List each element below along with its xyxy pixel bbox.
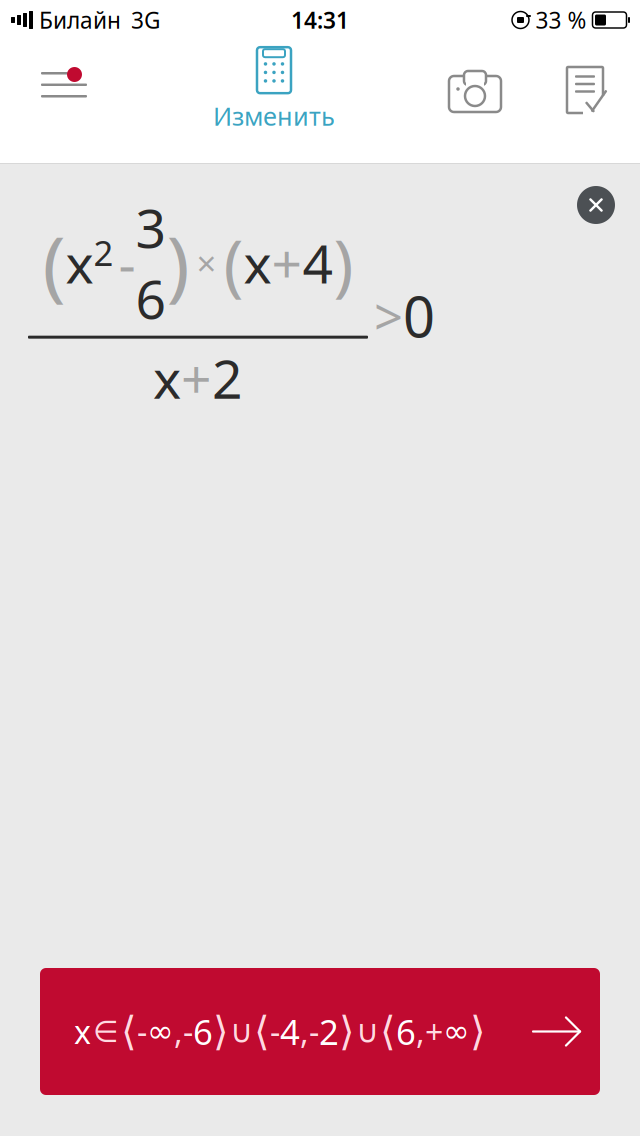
staticText: ∪ <box>356 1013 379 1050</box>
staticText: Билайн <box>39 5 121 35</box>
staticText: 2 <box>319 1008 339 1054</box>
staticText: ∈ <box>93 1015 119 1048</box>
staticText: - <box>270 1010 280 1053</box>
staticText: ( <box>42 211 65 314</box>
staticText: ) <box>333 219 353 307</box>
staticText: x <box>243 227 271 298</box>
staticText: - <box>137 1010 147 1053</box>
button[interactable]: Close <box>567 176 625 234</box>
staticText: - <box>183 1010 193 1053</box>
button[interactable]: Camera <box>420 40 530 140</box>
staticText: ∞ <box>443 1013 470 1050</box>
staticText: ⟩ <box>213 1009 229 1054</box>
staticText: x <box>153 343 181 413</box>
staticText: ∞ <box>147 1013 174 1050</box>
staticText: , <box>416 1010 425 1053</box>
staticText: , <box>174 1010 183 1053</box>
staticText: > <box>374 282 403 349</box>
staticText: x <box>74 1010 91 1053</box>
staticText: 14:31 <box>291 5 349 35</box>
staticText: ⟩ <box>470 1009 486 1054</box>
staticText: ⟩ <box>339 1009 355 1054</box>
staticText: + <box>181 343 212 413</box>
button[interactable]: x <box>40 968 600 1095</box>
staticText: 4 <box>280 1008 300 1054</box>
button[interactable]: Изменить <box>194 40 354 140</box>
staticText: + <box>425 1010 443 1053</box>
staticText: ⟨ <box>380 1009 396 1054</box>
staticText: 2 <box>93 229 113 275</box>
staticText: + <box>271 227 302 298</box>
staticText: 36 <box>135 192 166 334</box>
staticText: Изменить <box>213 99 335 133</box>
staticText: 2 <box>212 343 243 413</box>
staticText: ( <box>223 219 243 307</box>
staticText: × <box>196 240 216 286</box>
staticText: 6 <box>396 1008 416 1054</box>
staticText: 6 <box>193 1008 213 1054</box>
staticText: 3G <box>131 5 161 35</box>
staticText: - <box>118 227 135 298</box>
staticText: , <box>300 1010 309 1053</box>
staticText: 4 <box>302 227 333 298</box>
staticText: x <box>65 227 93 298</box>
staticText: ∪ <box>230 1013 253 1050</box>
staticText: ⟨ <box>121 1009 137 1054</box>
staticText: 0 <box>403 279 435 353</box>
button[interactable]: Menu <box>0 40 128 140</box>
staticText: 33 % <box>535 5 586 35</box>
staticText: ⟨ <box>254 1009 270 1054</box>
button[interactable]: Solutions <box>530 40 640 140</box>
staticText: ) <box>166 211 189 314</box>
staticText: - <box>309 1010 319 1053</box>
